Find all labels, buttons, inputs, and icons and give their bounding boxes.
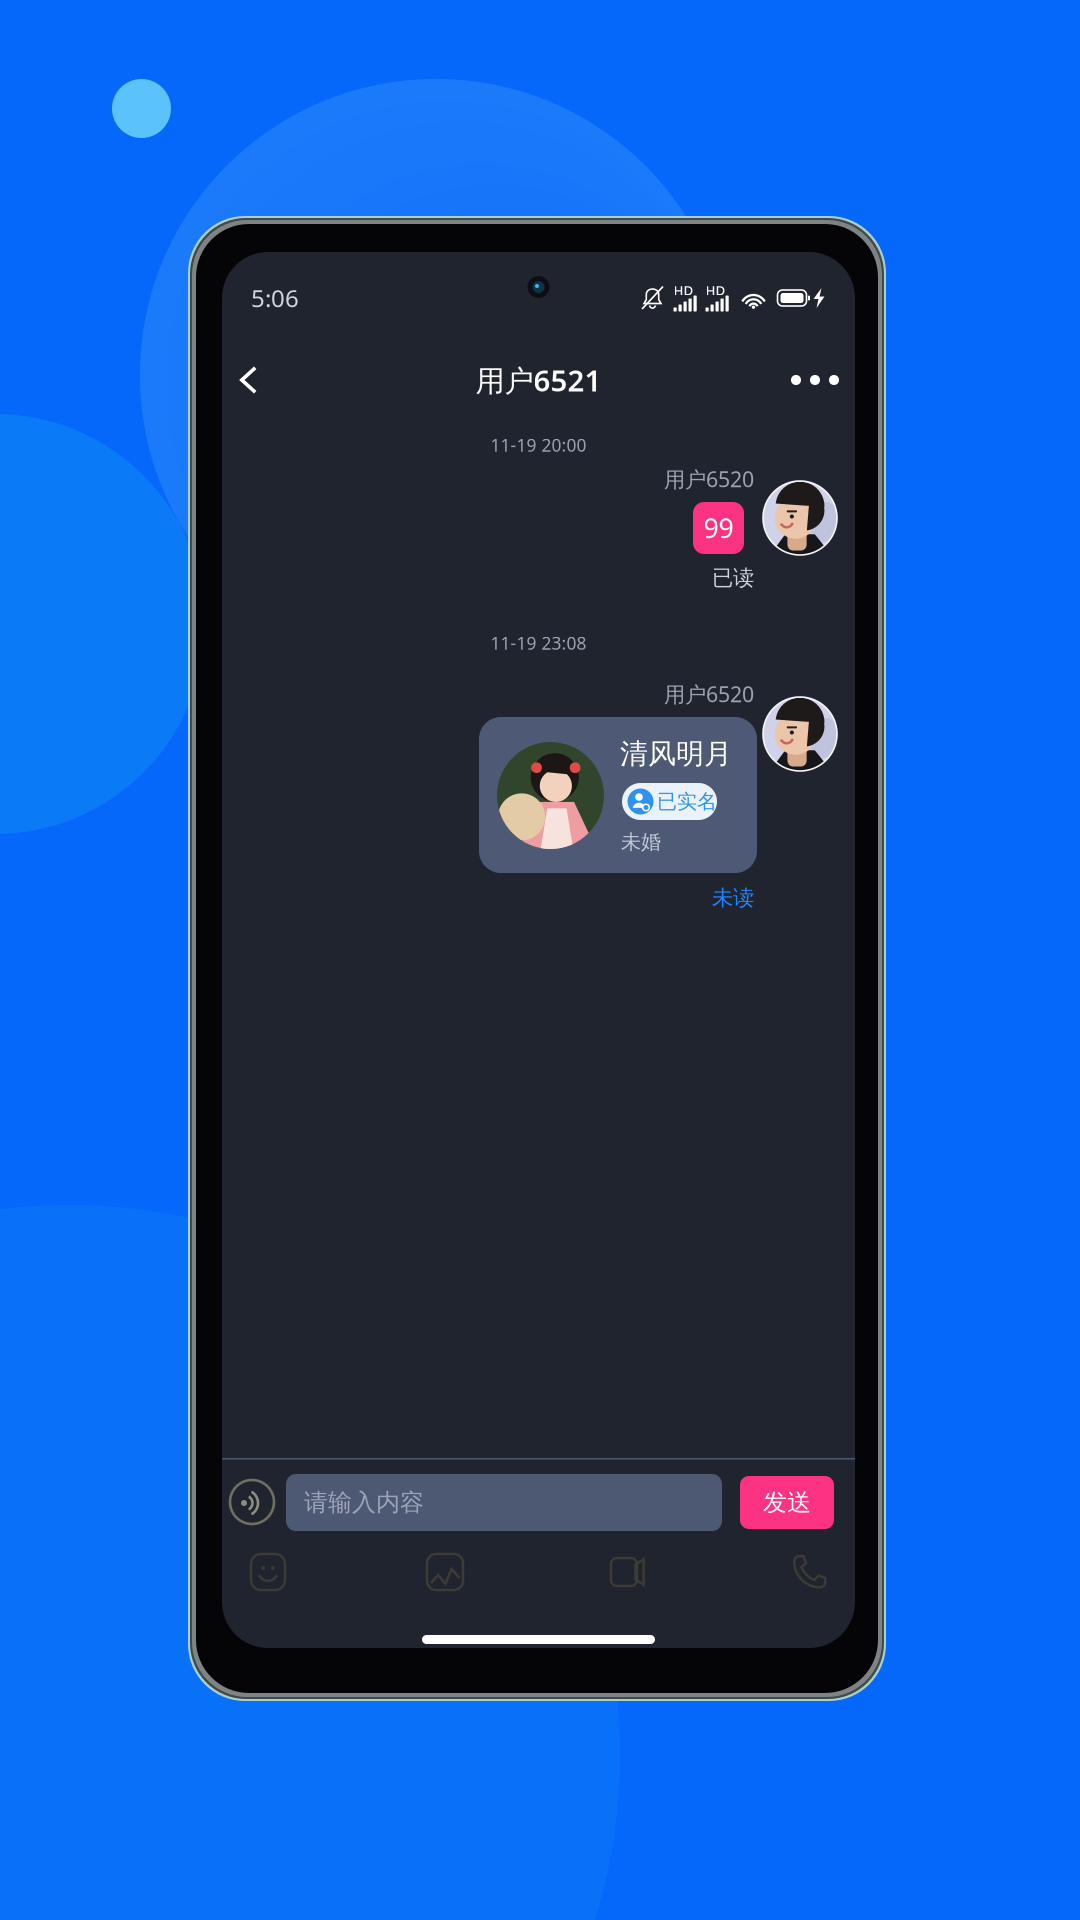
button[interactable]: Photo <box>418 1545 472 1599</box>
staticText: 已读 <box>712 565 754 591</box>
staticText: 已实名 <box>657 789 717 814</box>
staticText: 5:06 <box>251 282 299 314</box>
staticText: 用户6520 <box>664 465 754 493</box>
staticText: 99 <box>703 510 733 546</box>
staticText: HD <box>705 281 725 299</box>
staticText: 用户6521 <box>475 360 601 399</box>
staticText: 未婚 <box>621 830 661 854</box>
staticText: 11-19 20:00 <box>490 433 586 456</box>
button[interactable]: Video call <box>601 1545 655 1599</box>
button[interactable]: Voice call <box>783 1545 837 1599</box>
button[interactable]: More options <box>785 353 855 407</box>
button[interactable]: Emoji <box>241 1545 295 1599</box>
staticText: 请输入内容 <box>304 1488 424 1517</box>
button[interactable]: 发送 <box>740 1476 834 1529</box>
staticText: 用户6520 <box>664 680 754 708</box>
staticText: 未读 <box>712 885 754 911</box>
staticText: 清风明月 <box>620 737 732 771</box>
button[interactable]: Back <box>222 353 294 407</box>
staticText: 11-19 23:08 <box>490 631 586 654</box>
button[interactable]: Voice message <box>228 1478 276 1526</box>
staticText: HD <box>673 281 693 299</box>
staticText: 发送 <box>763 1488 811 1517</box>
